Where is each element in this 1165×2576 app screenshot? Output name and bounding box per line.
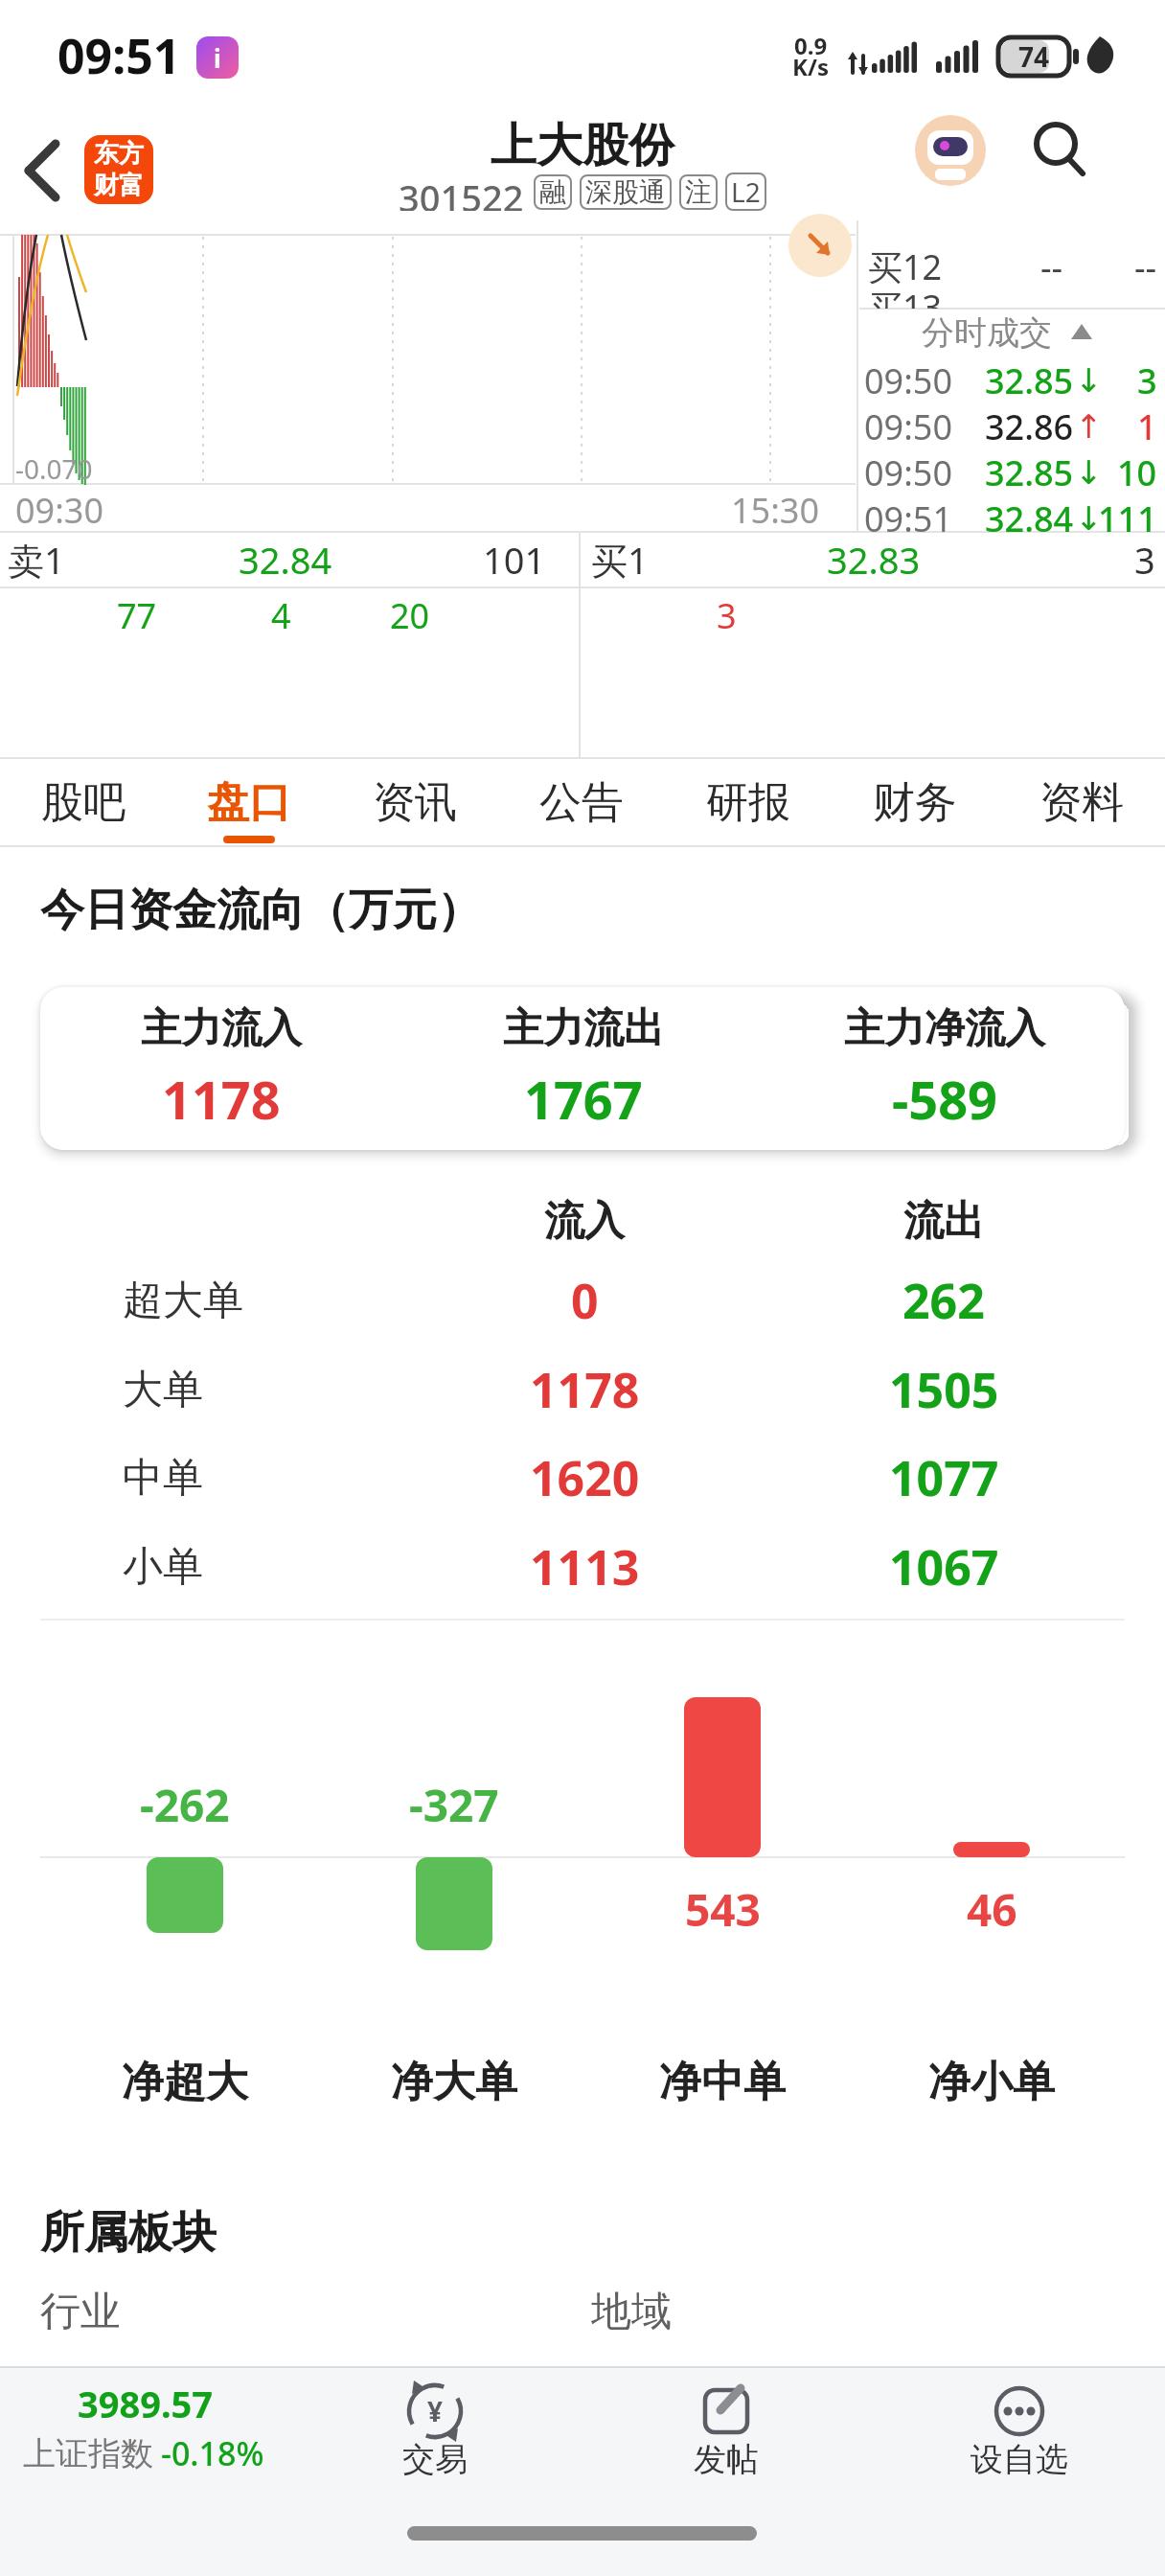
staticText: 301522 — [399, 172, 524, 211]
staticText: 流入 — [544, 1196, 625, 1247]
staticText: -- — [1040, 243, 1063, 290]
staticText: 15:30 — [731, 487, 820, 534]
staticText: 资料 — [1039, 776, 1124, 829]
staticText: 盘口 — [207, 776, 291, 829]
staticText: 注 — [685, 175, 712, 209]
staticText: 资讯 — [373, 776, 457, 829]
staticText: 买13 — [868, 284, 943, 309]
staticText: 3989.57 — [78, 2379, 214, 2428]
staticText: 所属板块 — [40, 2205, 217, 2261]
staticText: 地域 — [591, 2287, 672, 2337]
staticText: 262 — [902, 1268, 985, 1333]
staticText: 46 — [967, 1879, 1017, 1940]
button[interactable] — [613, 2369, 834, 2522]
staticText: ↓ — [1075, 499, 1103, 538]
button[interactable]: 研报 — [665, 759, 832, 845]
staticText: 公告 — [539, 776, 624, 829]
staticText: -262 — [140, 1775, 230, 1835]
staticText: 1178 — [530, 1357, 640, 1422]
staticText: 0.9 — [794, 30, 828, 61]
staticText: 32.85 — [985, 357, 1074, 404]
staticText: 09:50 — [864, 449, 953, 496]
staticText: 大单 — [123, 1365, 203, 1415]
staticText: 4 — [271, 592, 291, 639]
staticText: 卖1 — [8, 535, 65, 585]
staticText: -0.18% — [161, 2431, 264, 2475]
staticText: 深股通 — [585, 175, 666, 209]
staticText: 今日资金流向（万元） — [40, 883, 481, 938]
staticText: 净小单 — [928, 2056, 1055, 2108]
button[interactable] — [13, 130, 82, 211]
staticText: -589 — [892, 1064, 997, 1135]
staticText: 09:51 — [57, 23, 181, 88]
staticText: 主力流入 — [141, 1003, 302, 1054]
staticText: 09:50 — [864, 403, 953, 450]
button[interactable] — [1017, 111, 1094, 188]
staticText: ↓ — [1075, 361, 1103, 400]
staticText: 10 — [1117, 449, 1157, 496]
staticText: 交易 — [402, 2439, 468, 2480]
staticText: 研报 — [706, 776, 790, 829]
staticText: 09:51 — [864, 495, 953, 542]
staticText: 32.83 — [827, 535, 921, 585]
staticText: 主力净流入 — [844, 1003, 1045, 1054]
staticText: 净超大 — [122, 2056, 248, 2108]
staticText: 32.84 — [985, 495, 1074, 542]
button[interactable]: 资料 — [998, 759, 1165, 845]
staticText: 1 — [1137, 403, 1157, 450]
button[interactable] — [326, 2369, 546, 2522]
staticText: 1067 — [889, 1534, 999, 1599]
staticText: 主力流出 — [503, 1003, 664, 1054]
staticText: 买1 — [591, 535, 649, 585]
staticText: 买12 — [868, 243, 943, 290]
staticText: 1077 — [889, 1445, 999, 1510]
staticText: 1620 — [530, 1445, 640, 1510]
staticText: 发帖 — [694, 2439, 759, 2480]
staticText: 3 — [1137, 357, 1157, 404]
staticText: 32.85 — [985, 449, 1074, 496]
button[interactable] — [908, 107, 993, 192]
staticText: ↓ — [1075, 453, 1103, 492]
staticText: 小单 — [123, 1542, 203, 1593]
button[interactable]: 东方 — [84, 135, 153, 204]
staticText: K/s — [792, 51, 829, 82]
button[interactable]: 股吧 — [0, 759, 166, 845]
button[interactable]: 资讯 — [331, 759, 498, 845]
staticText: L2 — [731, 173, 761, 210]
staticText: 77 — [117, 592, 157, 639]
staticText: 1113 — [530, 1534, 640, 1599]
staticText: 净中单 — [659, 2056, 786, 2108]
button[interactable]: 财务 — [832, 759, 998, 845]
staticText: 1767 — [524, 1064, 643, 1135]
staticText: 3 — [717, 592, 737, 639]
staticText: 分时成交 — [922, 312, 1052, 354]
staticText: 中单 — [123, 1453, 203, 1504]
staticText: 财富 — [94, 170, 144, 201]
staticText: 32.86 — [985, 403, 1074, 450]
staticText: i — [214, 41, 221, 75]
staticText: 74 — [1018, 38, 1050, 75]
staticText: 0 — [571, 1268, 599, 1333]
staticText: 超大单 — [123, 1276, 243, 1326]
button[interactable]: 盘口 — [166, 759, 331, 845]
staticText: 20 — [390, 592, 430, 639]
staticText: 流出 — [903, 1196, 984, 1247]
staticText: 行业 — [40, 2287, 121, 2337]
staticText: 09:30 — [15, 487, 104, 534]
staticText: 财务 — [873, 776, 957, 829]
button[interactable]: 公告 — [498, 759, 665, 845]
button[interactable] — [905, 2369, 1135, 2522]
staticText: 上大股份 — [491, 117, 674, 174]
button[interactable] — [0, 2369, 287, 2522]
staticText: 111 — [1098, 495, 1157, 542]
staticText: ¥ — [427, 2393, 444, 2429]
staticText: 09:50 — [864, 357, 953, 404]
staticText: 设自选 — [971, 2439, 1068, 2480]
staticText: 101 — [483, 535, 546, 585]
staticText: 股吧 — [41, 776, 126, 829]
staticText: 东方 — [94, 138, 144, 170]
staticText: 32.84 — [239, 535, 332, 585]
staticText: -- — [1134, 243, 1157, 290]
staticText: 543 — [685, 1879, 761, 1940]
staticText: 净大单 — [391, 2056, 517, 2108]
